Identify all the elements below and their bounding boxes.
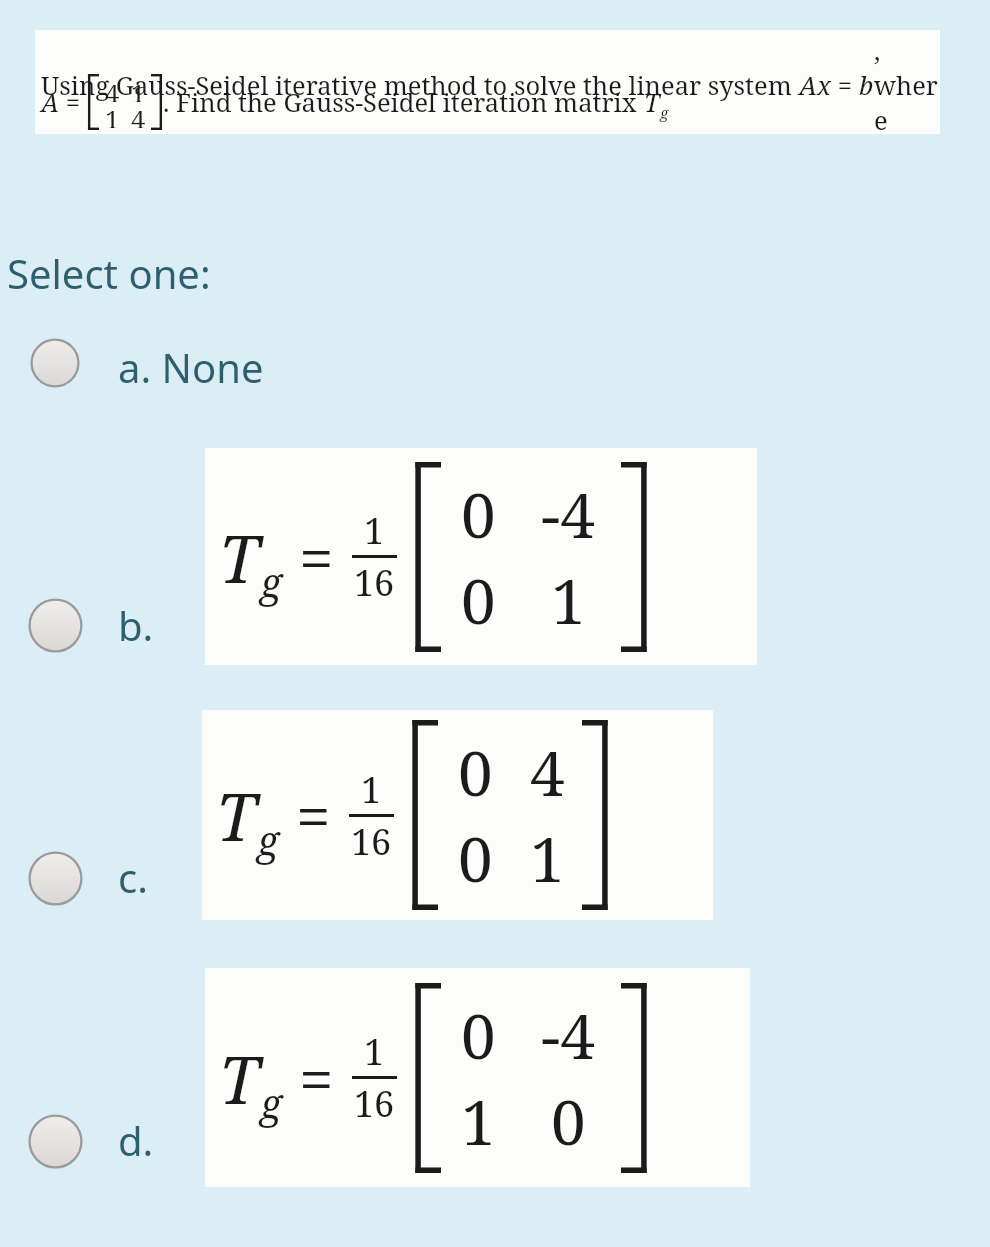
staticText: 1 (131, 76, 146, 102)
staticText: = (296, 773, 331, 857)
staticText: T (644, 85, 660, 120)
staticText: 0 (461, 993, 496, 1077)
staticText: b. (118, 598, 154, 652)
staticText: 4 (105, 76, 120, 102)
staticText: 4 (131, 102, 146, 128)
staticText: Using Gauss-Seidel iterative method to s… (41, 68, 799, 103)
staticText: A (41, 85, 59, 120)
staticText: g (260, 1076, 283, 1130)
button[interactable]: Option b. (14, 595, 194, 665)
staticText: T (216, 770, 257, 860)
staticText: -4 (541, 993, 595, 1077)
staticText: 16 (354, 558, 395, 607)
staticText: 1 (530, 816, 565, 900)
staticText: 1 (461, 1079, 496, 1163)
button[interactable]: a. None (14, 332, 334, 410)
staticText: 4 (530, 730, 565, 814)
staticText: a. None (118, 340, 264, 394)
staticText: 0 (458, 730, 493, 814)
staticText: Ax (799, 68, 831, 103)
staticText: = (831, 68, 859, 103)
button[interactable]: Option d. (14, 1111, 194, 1181)
staticText: d. (118, 1113, 154, 1167)
staticText: 1 (364, 1027, 385, 1076)
staticText: g (260, 555, 283, 609)
staticText: T (219, 512, 260, 602)
staticText: 1 (364, 506, 385, 555)
staticText: . Find the Gauss-Seidel iteration matrix (163, 85, 644, 120)
staticText: T (219, 1033, 260, 1123)
staticText: , where (874, 33, 946, 137)
staticText: 1 (361, 765, 382, 814)
button[interactable]: Option c. (14, 848, 194, 918)
staticText: c. (118, 850, 148, 904)
staticText: Select one: (7, 246, 211, 300)
staticText: = (299, 1036, 334, 1120)
staticText: 0 (458, 816, 493, 900)
staticText: 0 (461, 558, 496, 642)
staticText: 1 (551, 558, 586, 642)
staticText: b (859, 68, 874, 103)
staticText: 0 (551, 1079, 586, 1163)
staticText: 0 (461, 472, 496, 556)
staticText: = (299, 515, 334, 599)
staticText: 1 (105, 102, 120, 128)
staticText: 16 (354, 1079, 395, 1128)
staticText: g (660, 102, 669, 123)
staticText: = (59, 85, 87, 120)
staticText: g (257, 813, 280, 867)
staticText: 16 (351, 817, 392, 866)
staticText: -4 (541, 472, 595, 556)
